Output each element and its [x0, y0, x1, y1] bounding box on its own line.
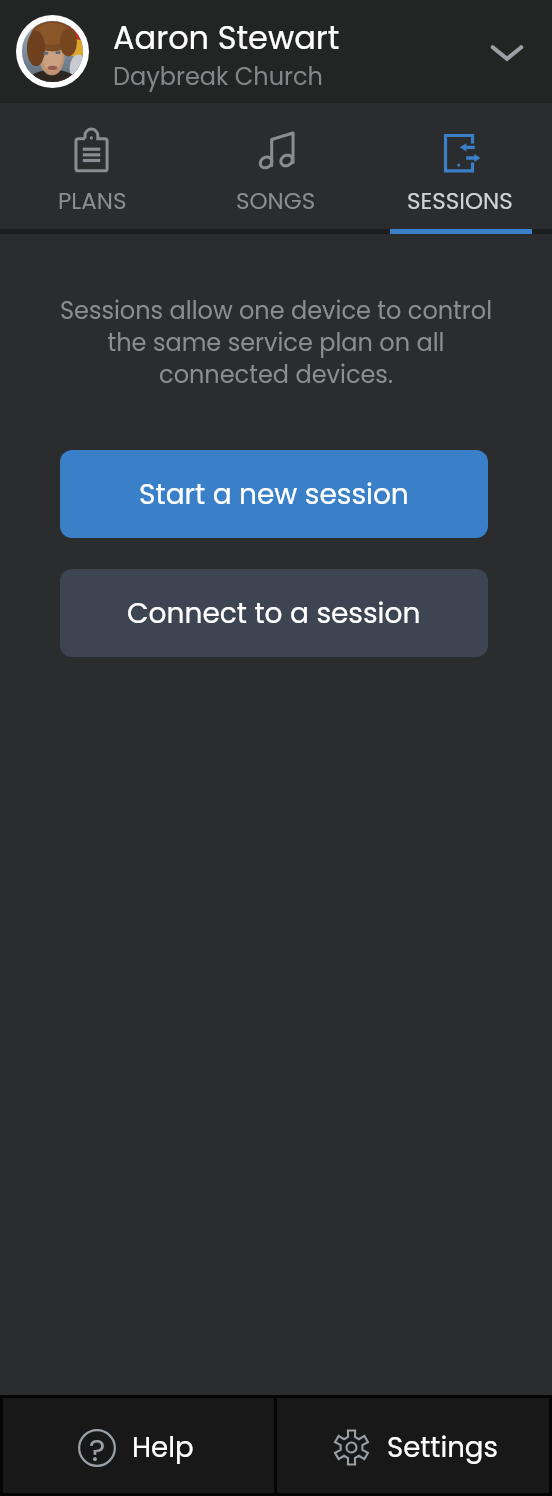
- button[interactable]: SESSIONS: [368, 103, 552, 217]
- staticText: Connect to a session: [127, 594, 421, 633]
- button[interactable]: PLANS: [0, 103, 184, 217]
- staticText: Start a new session: [139, 475, 409, 514]
- staticText: PLANS: [58, 185, 127, 217]
- staticText: Aaron Stewart: [113, 15, 340, 60]
- button[interactable]: Connect to a session: [60, 569, 488, 657]
- button[interactable]: SONGS: [184, 103, 368, 217]
- staticText: Daybreak Church: [113, 60, 323, 94]
- staticText: Sessions allow one device to control the…: [54, 294, 498, 392]
- button[interactable]: Settings: [277, 1398, 549, 1493]
- staticText: SONGS: [236, 185, 316, 217]
- button[interactable]: Aaron Stewart: [0, 0, 552, 103]
- button[interactable]: Start a new session: [60, 450, 488, 538]
- staticText: Settings: [387, 1428, 498, 1467]
- button[interactable]: ?: [3, 1398, 274, 1493]
- staticText: ?: [89, 1428, 106, 1466]
- staticText: Help: [132, 1428, 194, 1467]
- staticText: SESSIONS: [407, 185, 513, 217]
- button[interactable]: Switch account: [472, 17, 542, 87]
